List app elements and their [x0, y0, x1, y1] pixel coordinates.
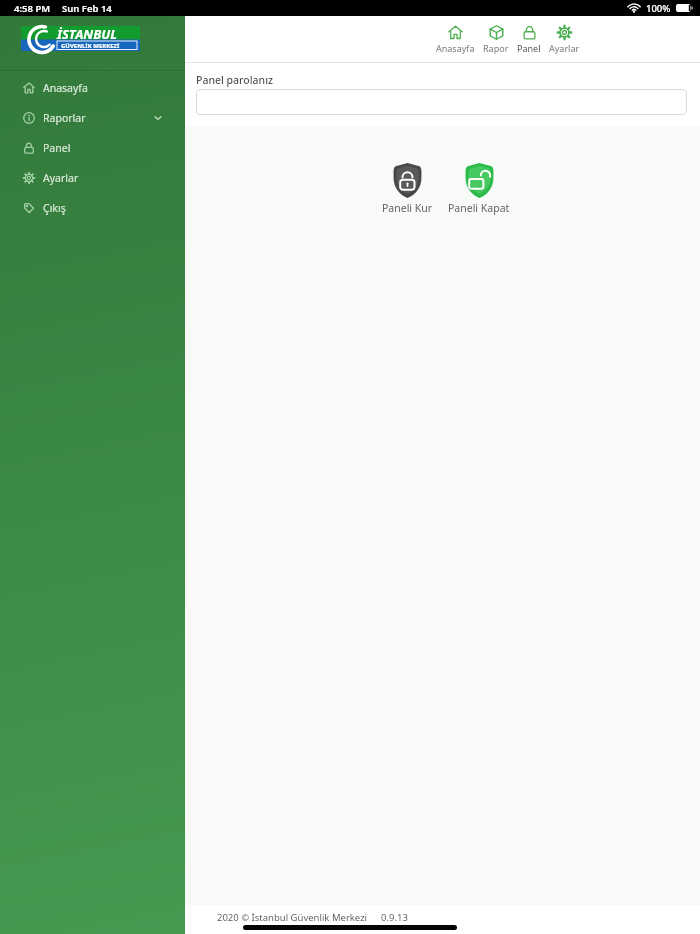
staticText: 100% — [646, 2, 671, 15]
button[interactable] — [196, 89, 687, 115]
staticText: Sun Feb 14 — [62, 2, 112, 15]
staticText: Raporlar — [43, 111, 86, 125]
button[interactable]: Panel — [0, 133, 185, 163]
staticText: Panel — [517, 42, 541, 54]
staticText: Anasayfa — [43, 81, 88, 95]
button[interactable]: Paneli Kur — [372, 163, 442, 215]
button[interactable]: Ayarlar — [0, 163, 185, 193]
staticText: Panel — [43, 141, 71, 155]
button[interactable]: Anasayfa — [0, 73, 185, 103]
button[interactable]: Anasayfa — [436, 25, 475, 54]
button[interactable]: Rapor — [483, 25, 509, 54]
button[interactable]: Raporlar — [0, 103, 185, 133]
staticText: Rapor — [483, 42, 509, 54]
staticText: Ayarlar — [43, 171, 79, 185]
staticText: İSTANBUL — [57, 25, 117, 43]
staticText: Çıkış — [43, 201, 66, 215]
staticText: Paneli Kur — [382, 201, 433, 215]
staticText: 4:58 PM — [14, 2, 51, 15]
staticText: Anasayfa — [436, 42, 475, 54]
button[interactable]: Paneli Kapat — [444, 163, 514, 215]
staticText: GÜVENLİK MERKEZİ — [61, 42, 120, 50]
staticText: Ayarlar — [549, 42, 580, 54]
staticText: 0.9.13 — [381, 911, 408, 924]
button[interactable]: Panel — [517, 25, 541, 54]
staticText: Paneli Kapat — [448, 201, 510, 215]
staticText: 2020 © İstanbul Güvenlik Merkezi — [217, 911, 368, 924]
button[interactable]: Çıkış — [0, 193, 185, 223]
button[interactable]: Ayarlar — [549, 25, 580, 54]
staticText: Panel parolanız — [196, 73, 274, 87]
